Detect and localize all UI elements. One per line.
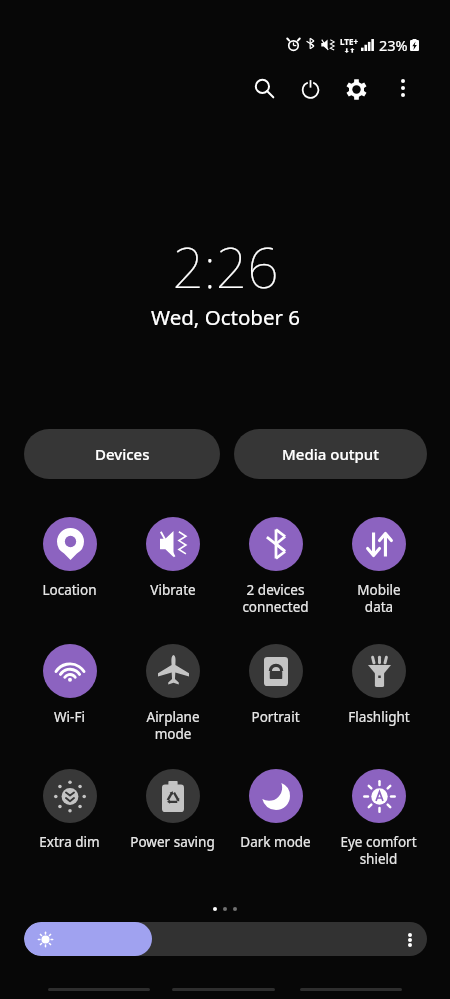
staticText: 2:26 bbox=[172, 229, 279, 304]
staticText: Portrait bbox=[251, 708, 300, 726]
button[interactable]: Airplane mode bbox=[121, 644, 224, 743]
button[interactable]: Portrait bbox=[224, 644, 327, 726]
button[interactable]: Devices bbox=[24, 429, 220, 479]
staticText: Devices bbox=[95, 444, 150, 464]
staticText: Airplane mode bbox=[146, 708, 200, 743]
staticText: Wed, October 6 bbox=[151, 303, 300, 331]
staticText: 2 devices connected bbox=[242, 581, 309, 616]
staticText: LTE+ bbox=[340, 36, 358, 47]
button[interactable]: Settings bbox=[334, 67, 378, 111]
staticText: Vibrate bbox=[150, 581, 196, 599]
button[interactable]: Vibrate bbox=[121, 517, 224, 599]
button[interactable]: Brightness bbox=[24, 922, 427, 956]
staticText: Dark mode bbox=[240, 833, 311, 851]
button[interactable]: Wi-Fi bbox=[18, 644, 121, 726]
staticText: Mobile data bbox=[357, 581, 401, 616]
button[interactable]: 2 devices connected bbox=[224, 517, 327, 616]
button[interactable]: Brightness settings bbox=[396, 929, 424, 950]
button[interactable]: Search bbox=[242, 66, 286, 110]
button[interactable]: Extra dim bbox=[18, 769, 121, 851]
staticText: Wi-Fi bbox=[54, 708, 85, 726]
staticText: Location bbox=[42, 581, 97, 599]
button[interactable]: Power off bbox=[288, 66, 332, 110]
staticText: Eye comfort shield bbox=[340, 833, 417, 868]
button[interactable]: Eye comfort shield bbox=[327, 769, 430, 868]
button[interactable]: Mobile data bbox=[327, 517, 430, 616]
staticText: Extra dim bbox=[39, 833, 100, 851]
staticText: Media output bbox=[282, 444, 379, 464]
button[interactable]: Power saving bbox=[121, 769, 224, 851]
staticText: 23% bbox=[379, 35, 408, 55]
button[interactable]: Media output bbox=[234, 429, 427, 479]
staticText: Power saving bbox=[130, 833, 215, 851]
button[interactable]: Location bbox=[18, 517, 121, 599]
button[interactable]: Flashlight bbox=[327, 644, 430, 726]
staticText: Flashlight bbox=[348, 708, 410, 726]
button[interactable]: More options bbox=[383, 68, 423, 108]
button[interactable]: Dark mode bbox=[224, 769, 327, 851]
